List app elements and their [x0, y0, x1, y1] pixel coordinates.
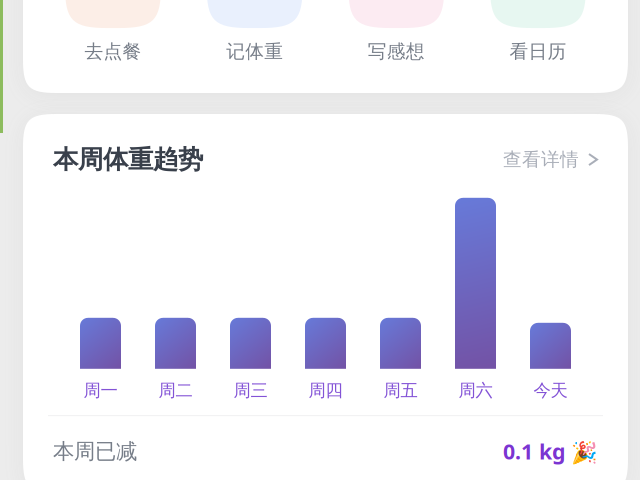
button[interactable]: 写感想	[348, 0, 444, 63]
staticText: 本周已减	[53, 438, 137, 464]
staticText: 周二	[158, 380, 192, 401]
staticText: 0.1 kg 🎉	[503, 437, 598, 465]
staticText: 周三	[233, 380, 267, 401]
button[interactable]: 查看详情	[503, 148, 598, 171]
staticText: 写感想	[368, 40, 425, 63]
staticText: 查看详情	[503, 148, 579, 171]
staticText: 看日历	[509, 40, 566, 63]
staticText: 记体重	[226, 40, 283, 63]
staticText: 周四	[308, 380, 342, 401]
button[interactable]: 去点餐	[65, 0, 161, 63]
button[interactable]: 记体重	[207, 0, 303, 63]
staticText: 周一	[83, 380, 117, 401]
staticText: 去点餐	[84, 40, 141, 63]
staticText: 今天	[533, 380, 567, 401]
button[interactable]: 看日历	[490, 0, 586, 63]
staticText: 周六	[458, 380, 492, 401]
staticText: 周五	[383, 380, 417, 401]
staticText: 本周体重趋势	[53, 144, 203, 175]
